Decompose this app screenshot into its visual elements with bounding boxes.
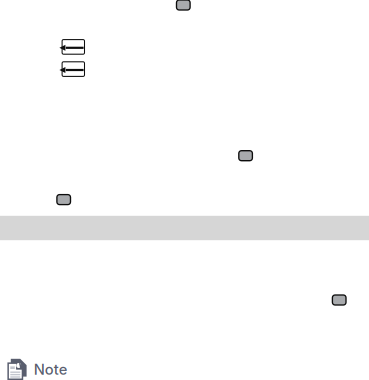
staticText: Note (34, 360, 68, 378)
button[interactable]: Back (59, 40, 85, 56)
button[interactable]: Note (6, 358, 68, 380)
button[interactable]: Page indicator (176, 0, 190, 10)
button[interactable]: Badge (239, 151, 252, 161)
button[interactable]: Back (59, 62, 85, 78)
button[interactable]: Badge (57, 195, 70, 205)
button[interactable]: Badge (332, 295, 346, 305)
